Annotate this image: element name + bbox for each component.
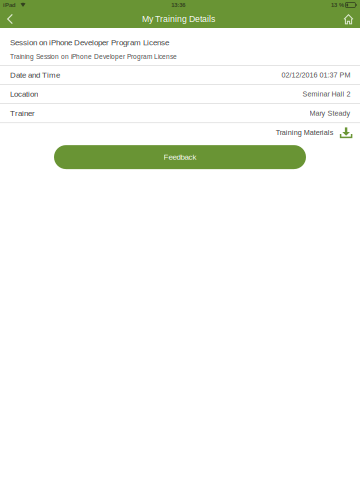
staticText: Mary Steady <box>309 109 350 117</box>
staticText: 02/12/2016 01:37 PM <box>281 71 350 79</box>
button[interactable]: Feedback <box>54 145 306 169</box>
staticText: Training Materials <box>276 129 334 137</box>
staticText: Trainer <box>10 109 35 118</box>
staticText: iPad <box>3 2 16 8</box>
staticText: 13:36 <box>171 2 185 8</box>
staticText: Training Session on iPhone Developer Pro… <box>10 53 177 60</box>
staticText: Feedback <box>163 153 196 161</box>
staticText: Session on iPhone Developer Program Lice… <box>10 38 169 47</box>
staticText: 13 % <box>331 2 344 8</box>
button[interactable]: Date and Time <box>0 66 360 85</box>
button[interactable]: Home <box>334 10 360 28</box>
staticText: Date and Time <box>10 71 60 79</box>
staticText: My Training Details <box>142 14 215 24</box>
staticText: Seminar Hall 2 <box>302 90 350 98</box>
button[interactable]: Training Materials <box>0 123 360 142</box>
button[interactable]: Location <box>0 85 360 104</box>
staticText: Location <box>10 90 38 98</box>
button[interactable]: Back <box>0 10 23 28</box>
button[interactable]: Trainer <box>0 104 360 123</box>
